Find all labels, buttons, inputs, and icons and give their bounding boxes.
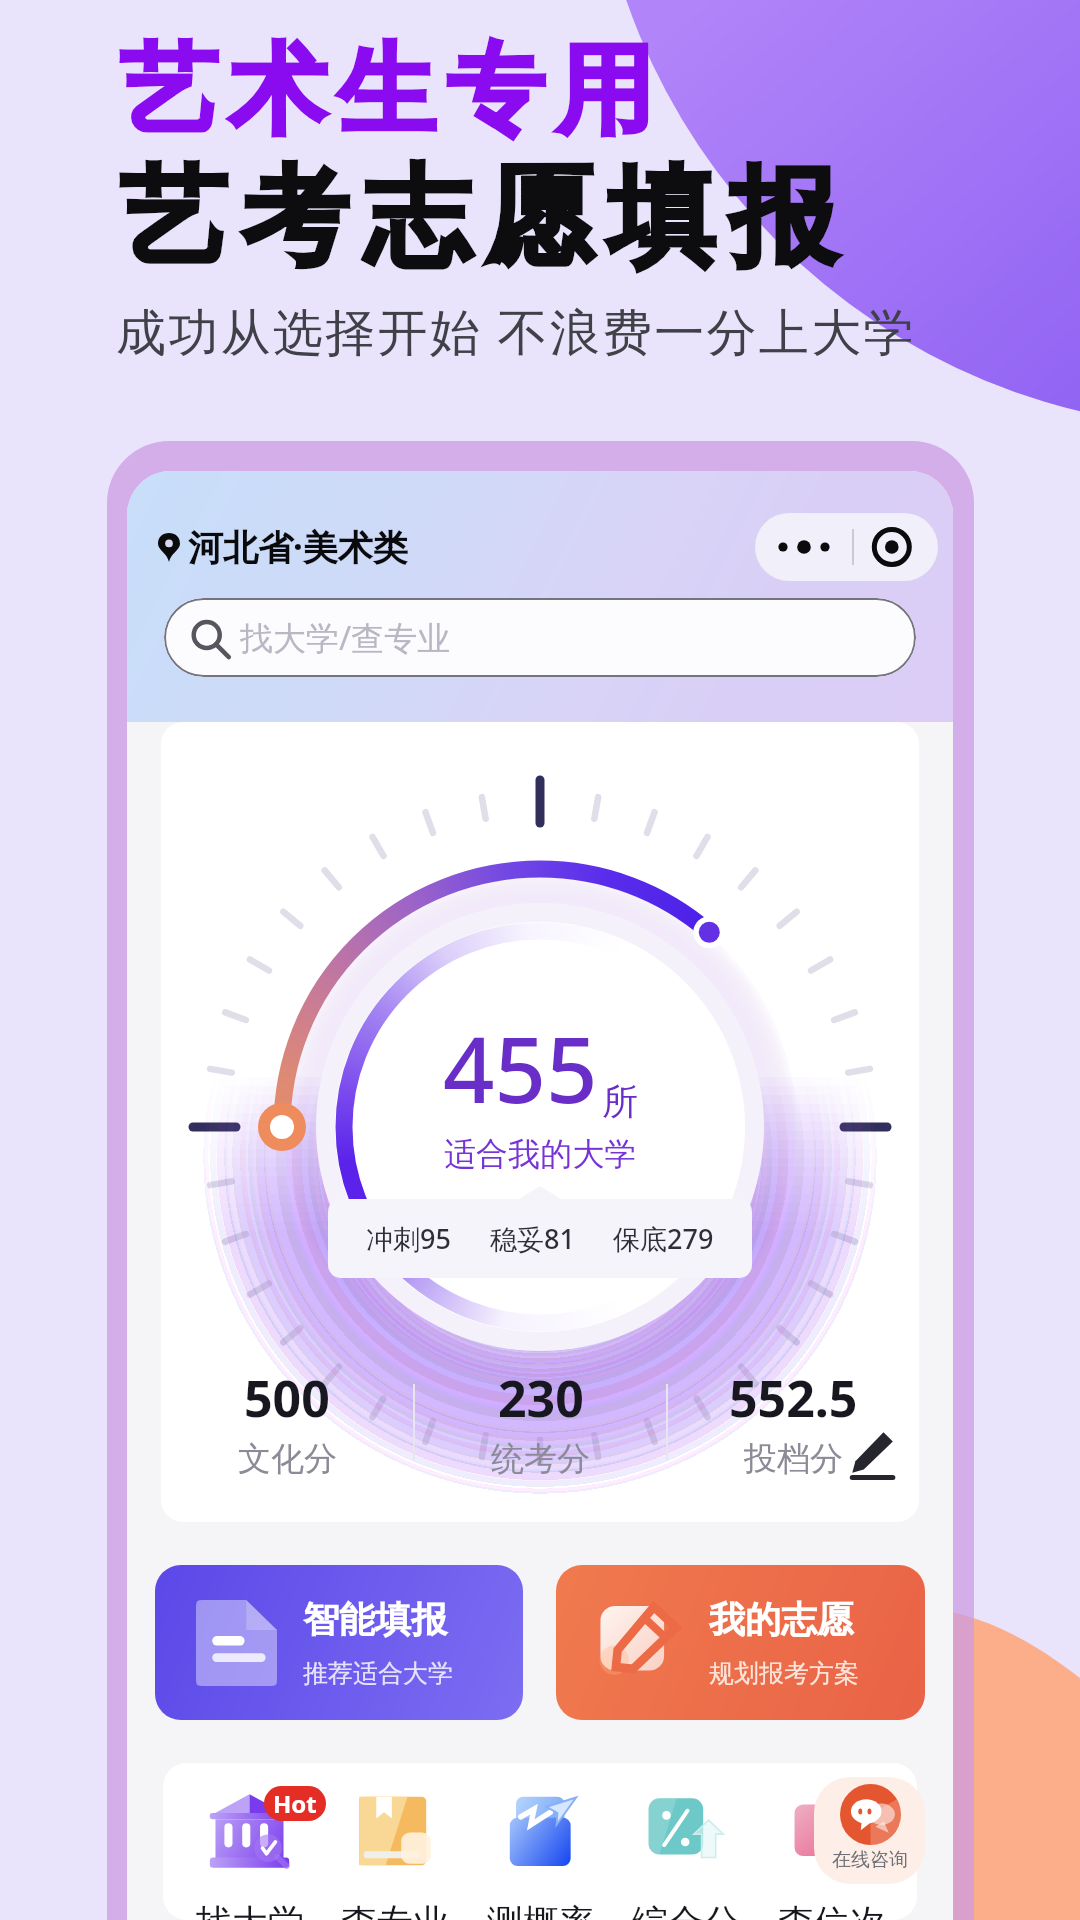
- button[interactable]: 综合分: [626, 1792, 745, 1920]
- staticText: 455: [443, 1007, 598, 1130]
- button[interactable]: 查专业: [335, 1792, 454, 1920]
- staticText: 测概率: [487, 1900, 595, 1920]
- button[interactable]: 230: [415, 1364, 666, 1480]
- button[interactable]: 冲刺95: [328, 1199, 752, 1278]
- staticText: 规划报考方案: [709, 1658, 859, 1689]
- staticText: 所: [602, 1079, 638, 1124]
- staticText: 推荐适合大学: [303, 1658, 453, 1689]
- button[interactable]: 查位次: [772, 1792, 891, 1920]
- button[interactable]: 测概率: [481, 1792, 600, 1920]
- button[interactable]: More options and close: [755, 513, 938, 581]
- staticText: 找大学/查专业: [240, 615, 451, 660]
- staticText: 230: [498, 1364, 584, 1432]
- button[interactable]: 河北省·美术类: [158, 523, 408, 571]
- staticText: 统考分: [491, 1438, 590, 1480]
- staticText: 河北省·美术类: [188, 523, 408, 571]
- staticText: 稳妥81: [490, 1220, 575, 1257]
- staticText: 保底279: [613, 1220, 714, 1257]
- staticText: 500: [244, 1364, 330, 1432]
- staticText: 查专业: [341, 1900, 449, 1920]
- button[interactable]: Edit scores: [845, 1428, 897, 1480]
- button[interactable]: 500: [161, 1364, 413, 1480]
- staticText: 我的志愿: [709, 1597, 853, 1642]
- staticText: 查位次: [778, 1900, 886, 1920]
- button[interactable]: 552.5: [668, 1364, 919, 1480]
- staticText: 文化分: [238, 1438, 337, 1480]
- staticText: 艺考志愿填报: [112, 151, 844, 286]
- button[interactable]: 我的志愿: [556, 1565, 925, 1720]
- staticText: 适合我的大学: [444, 1134, 637, 1174]
- staticText: 在线咨询: [832, 1848, 908, 1872]
- staticText: 智能填报: [303, 1597, 447, 1642]
- button[interactable]: 找大学/查专业: [164, 598, 916, 677]
- staticText: 投档分: [744, 1438, 843, 1480]
- button[interactable]: Hot: [190, 1792, 309, 1920]
- staticText: 找大学: [196, 1900, 304, 1920]
- button[interactable]: 智能填报: [155, 1565, 523, 1720]
- staticText: 艺术生专用: [114, 30, 659, 153]
- staticText: 综合分: [632, 1900, 740, 1920]
- button[interactable]: Online consultation: [814, 1777, 925, 1884]
- staticText: 冲刺95: [366, 1220, 451, 1257]
- staticText: 552.5: [729, 1364, 858, 1432]
- staticText: 成功从选择开始 不浪费一分上大学: [116, 297, 916, 365]
- staticText: Hot: [273, 1787, 317, 1820]
